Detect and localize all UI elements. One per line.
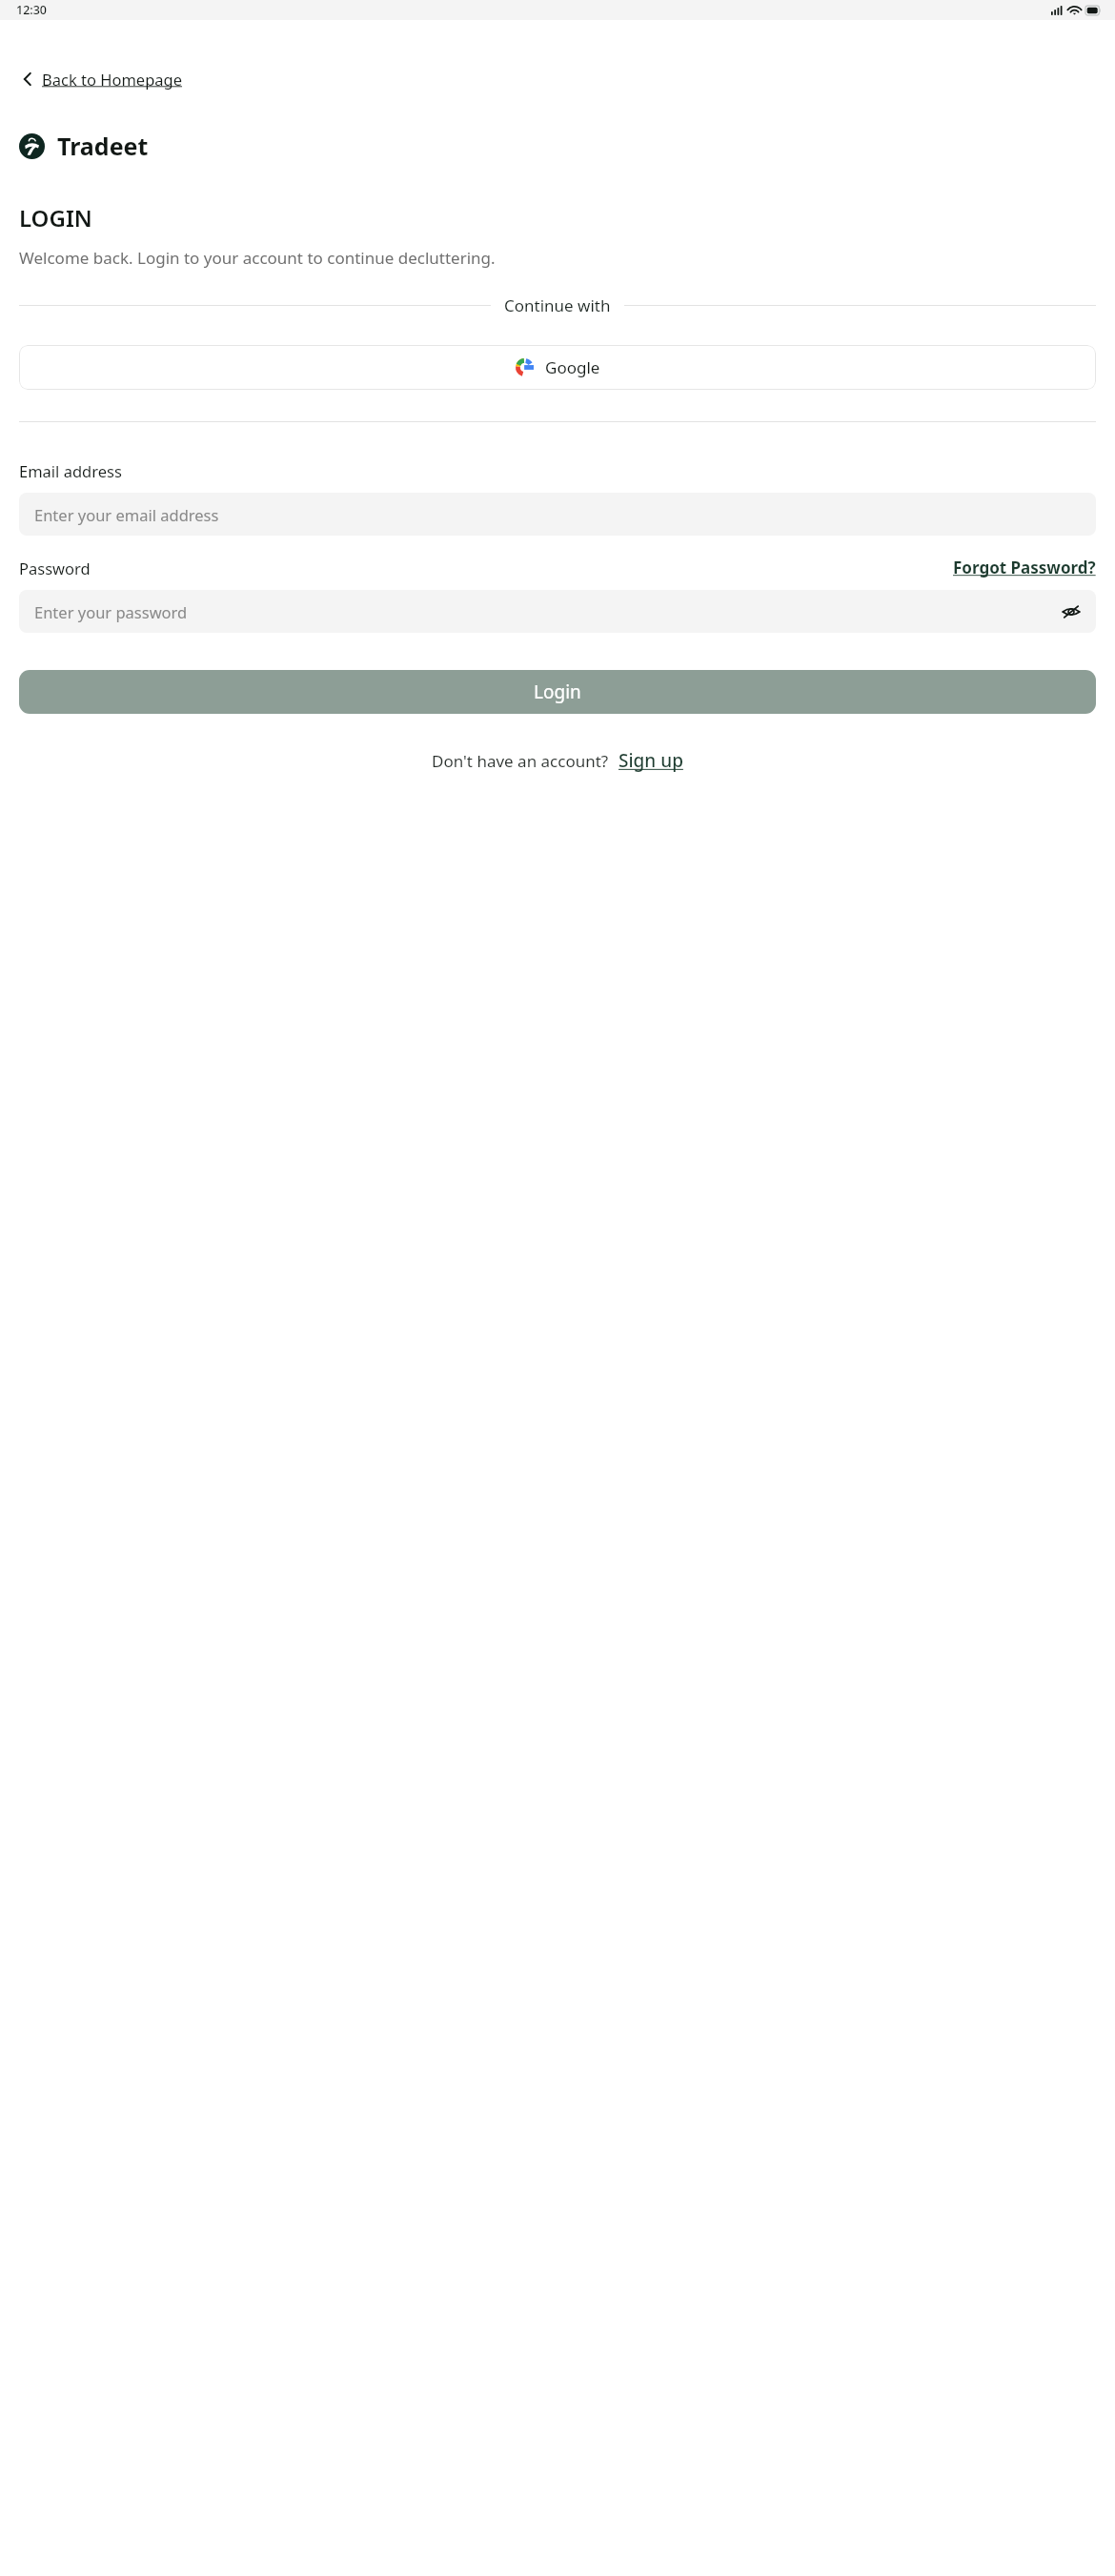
staticText: 12:30 <box>16 2 48 18</box>
button[interactable]: Enter your email address <box>19 493 1096 536</box>
staticText: Back to Homepage <box>42 69 183 90</box>
staticText: Login <box>534 679 581 704</box>
staticText: LOGIN <box>19 202 92 233</box>
button[interactable]: Show password <box>1058 601 1085 622</box>
staticText: Continue with <box>504 294 611 316</box>
staticText: Google <box>545 356 600 378</box>
staticText: Welcome back. Login to your account to c… <box>19 247 496 269</box>
staticText: Don't have an account? <box>432 750 609 772</box>
button[interactable]: Sign up <box>618 748 683 773</box>
staticText: Tradeet <box>57 130 149 162</box>
button[interactable]: Forgot Password? <box>953 557 1096 578</box>
button[interactable]: Google <box>19 345 1096 390</box>
staticText: Forgot Password? <box>953 557 1096 578</box>
button[interactable]: Back to Homepage <box>19 65 187 93</box>
staticText: Enter your email address <box>34 504 219 525</box>
button[interactable]: Enter your password <box>19 590 1096 633</box>
staticText: Email address <box>19 460 122 481</box>
staticText: Password <box>19 558 91 578</box>
button[interactable]: Login <box>19 670 1096 714</box>
staticText: Enter your password <box>34 601 188 622</box>
staticText: Sign up <box>618 748 683 773</box>
